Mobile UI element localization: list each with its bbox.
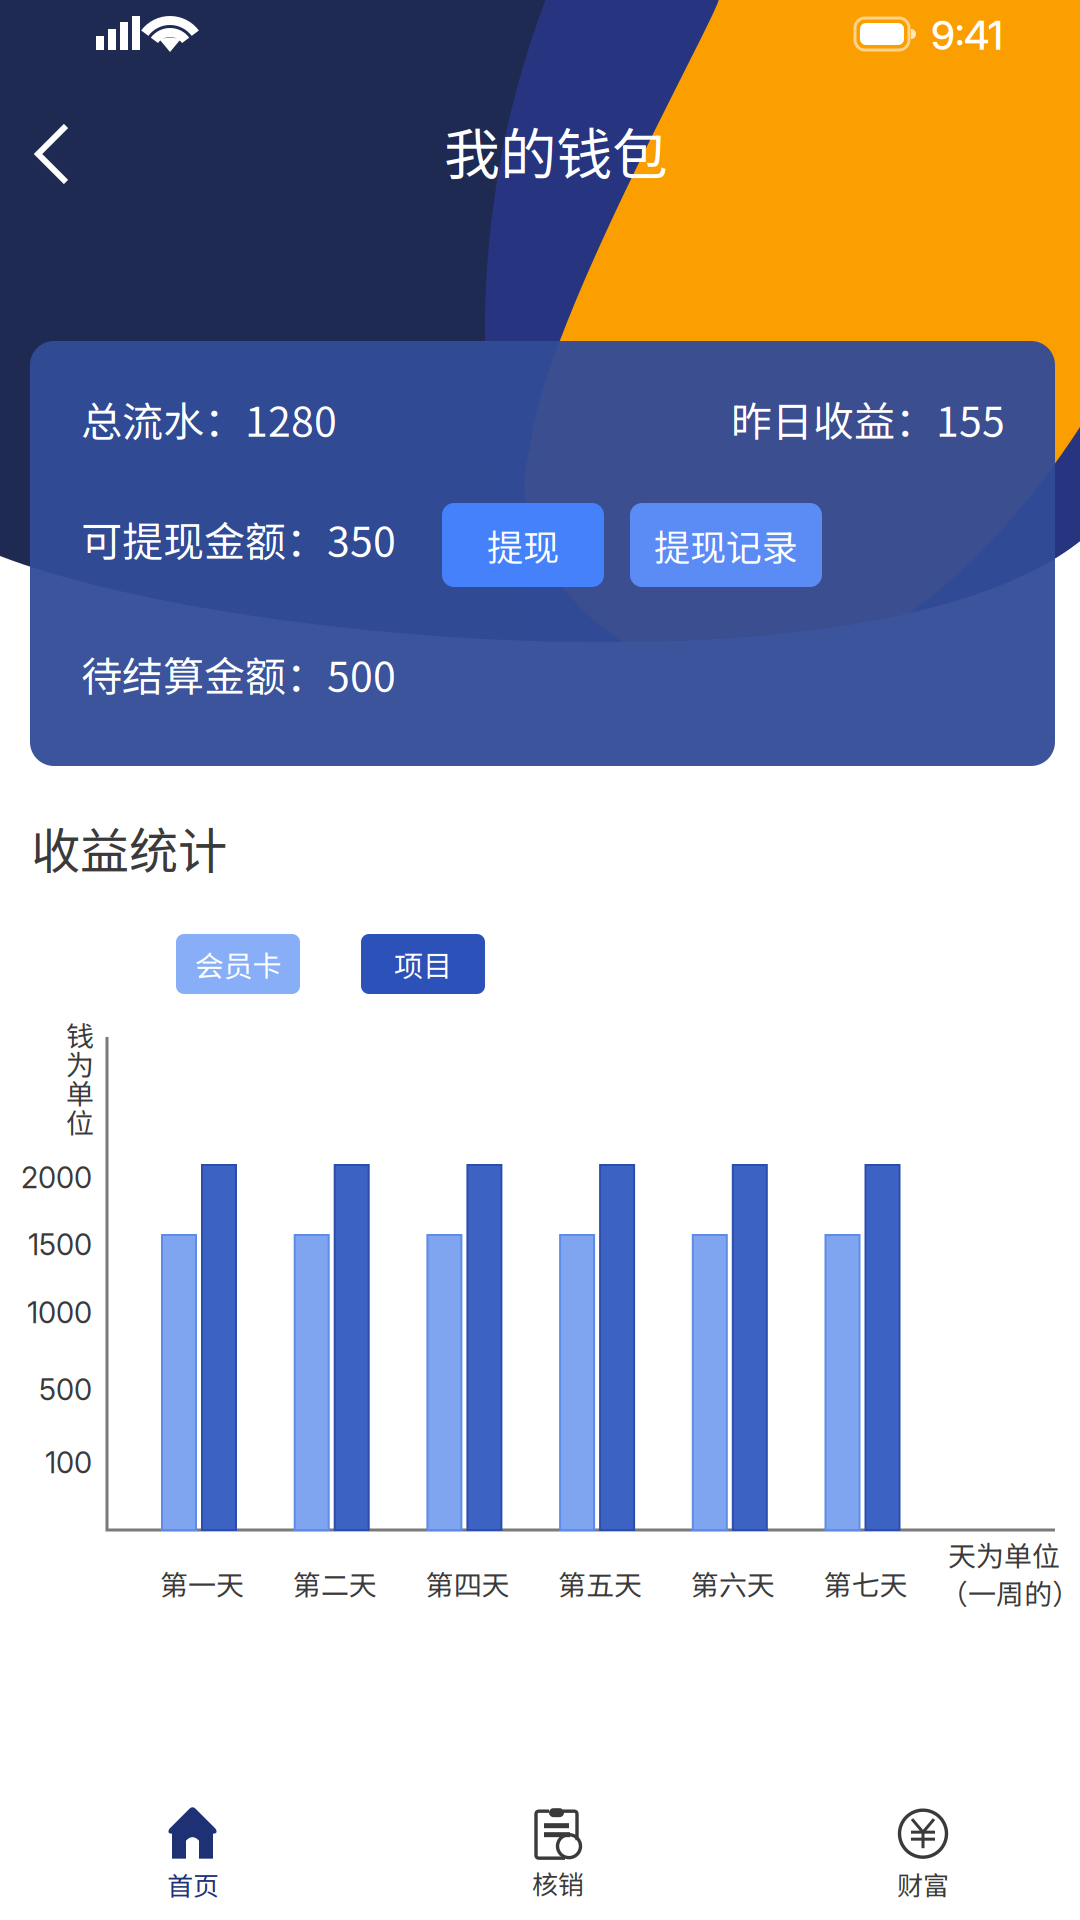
staticText: 第一天: [160, 1563, 244, 1603]
staticText: 钱: [66, 1014, 94, 1054]
staticText: （一周的）: [940, 1572, 1080, 1612]
staticText: 9:41: [931, 11, 1003, 59]
button[interactable]: 核销: [408, 1790, 708, 1920]
staticText: 天为单位: [948, 1534, 1060, 1574]
staticText: 核销: [532, 1864, 584, 1902]
staticText: 2000: [21, 1160, 92, 1195]
staticText: 500: [39, 1372, 92, 1407]
staticText: 为: [66, 1043, 94, 1083]
staticText: 第五天: [558, 1563, 642, 1603]
button[interactable]: 项目: [361, 934, 485, 994]
staticText: 位: [66, 1101, 94, 1141]
button[interactable]: 会员卡: [176, 934, 300, 994]
staticText: 第六天: [691, 1563, 775, 1603]
staticText: 1000: [27, 1295, 92, 1330]
staticText: 提现记录: [654, 519, 798, 571]
staticText: 第二天: [293, 1563, 377, 1603]
staticText: 会员卡: [194, 943, 281, 985]
staticText: 收益统计: [31, 812, 227, 883]
staticText: 可提现金额：350: [81, 509, 396, 568]
button[interactable]: 返回: [18, 108, 96, 200]
staticText: 1500: [28, 1227, 92, 1262]
staticText: 第四天: [425, 1563, 509, 1603]
button[interactable]: 首页: [43, 1790, 343, 1920]
staticText: 项目: [394, 943, 452, 985]
staticText: 我的钱包: [444, 110, 668, 191]
staticText: 待结算金额：500: [81, 644, 396, 703]
staticText: 单: [66, 1072, 94, 1112]
staticText: 财富: [897, 1865, 949, 1903]
staticText: 第七天: [823, 1563, 907, 1603]
staticText: 100: [45, 1445, 92, 1480]
button[interactable]: 提现记录: [630, 503, 822, 587]
staticText: 总流水：1280: [81, 389, 337, 448]
staticText: 昨日收益：155: [731, 389, 1005, 448]
staticText: 首页: [167, 1866, 219, 1903]
staticText: 提现: [487, 519, 559, 571]
button[interactable]: 财富: [773, 1790, 1073, 1920]
button[interactable]: 提现: [442, 503, 604, 587]
